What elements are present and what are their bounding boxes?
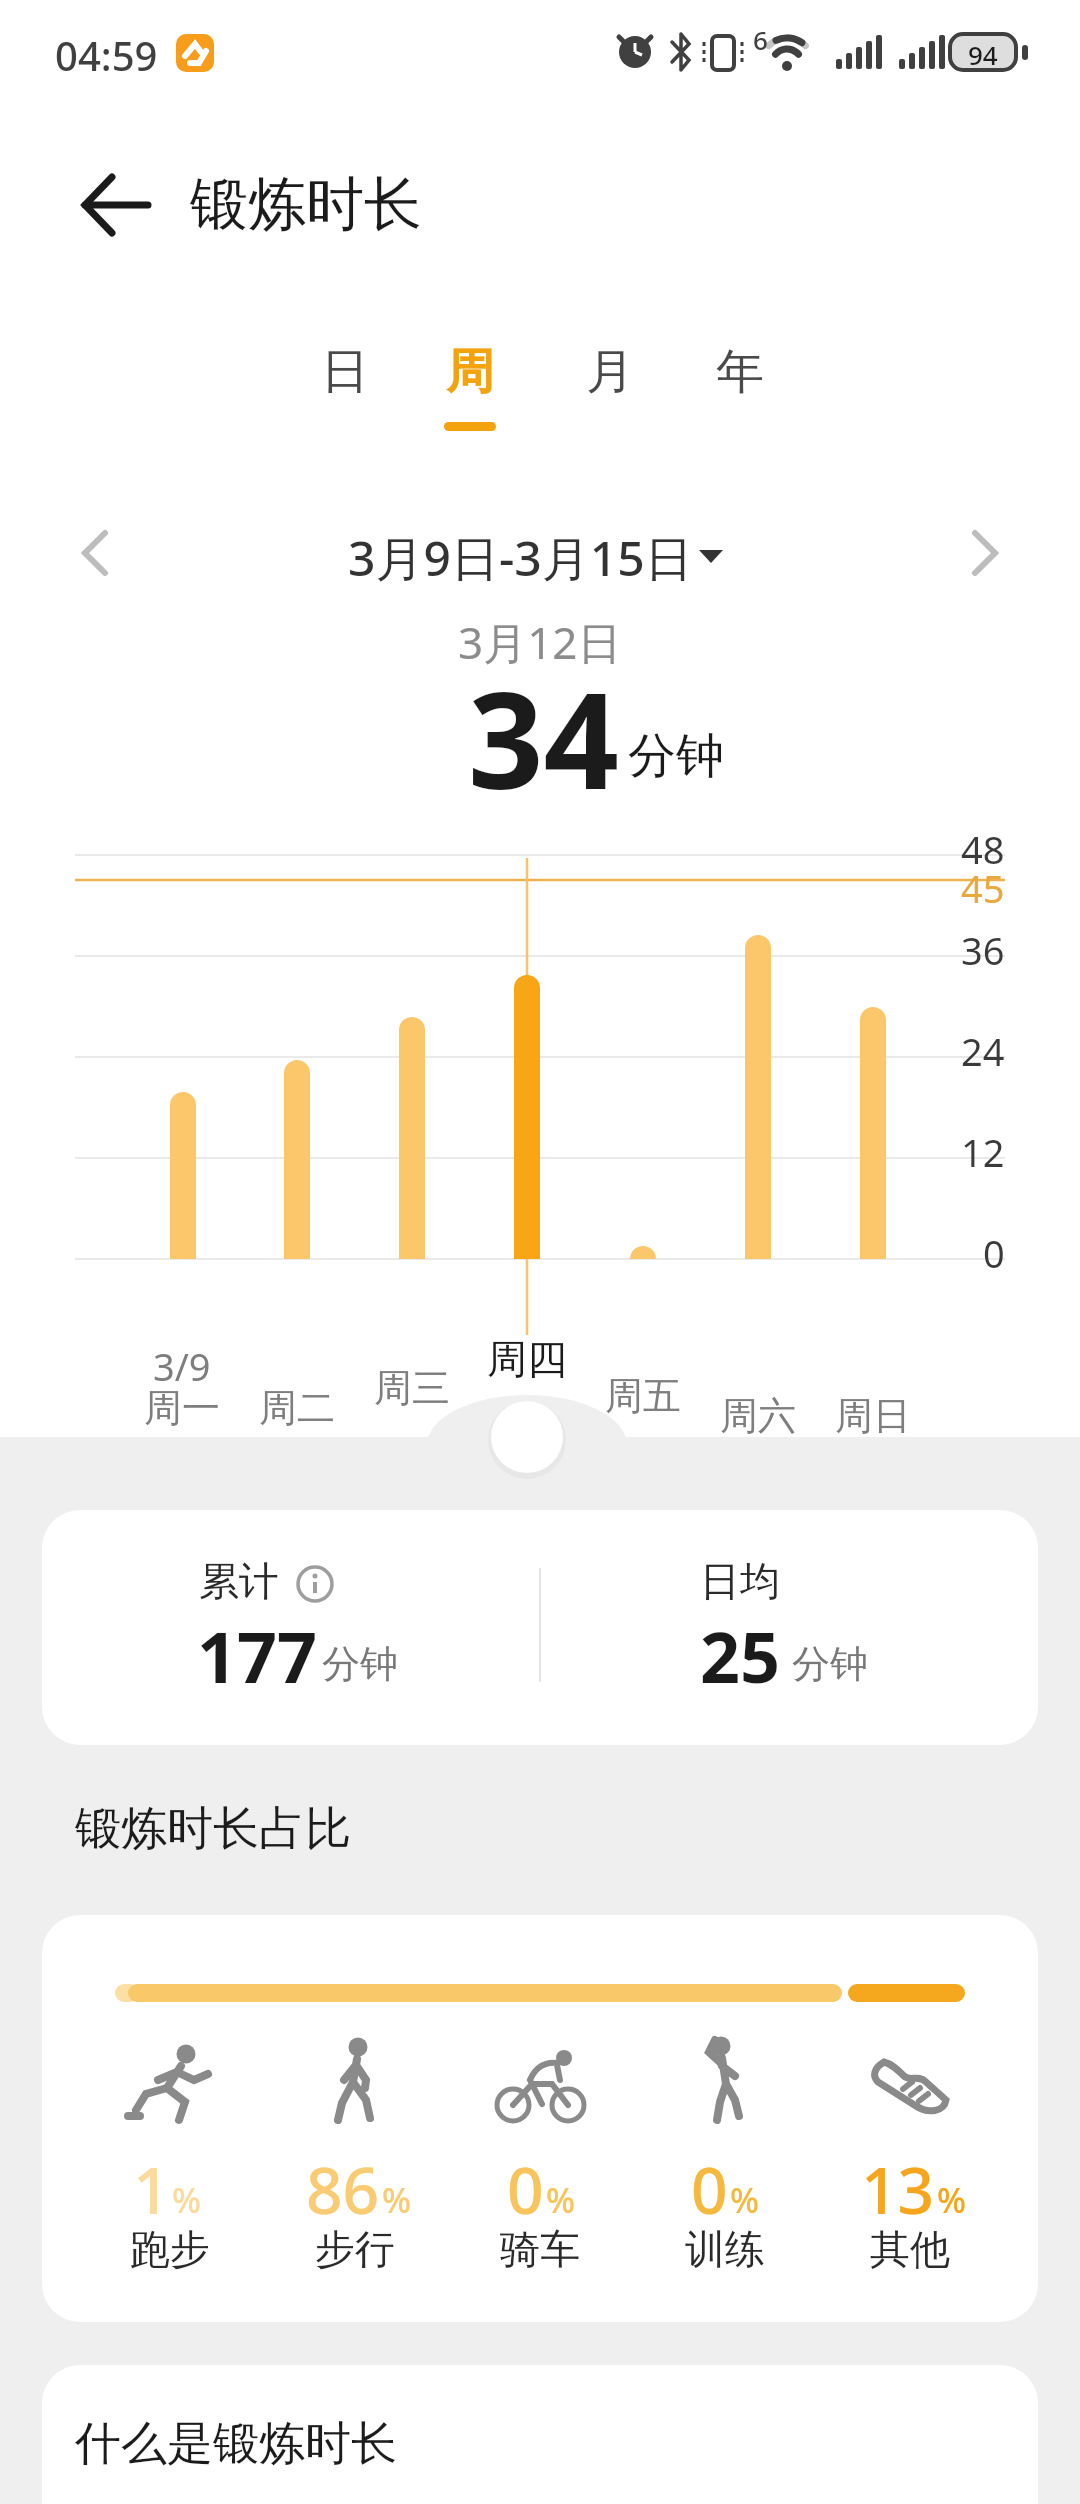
staticText: 训练 — [685, 2224, 765, 2274]
staticText: 月 — [586, 342, 634, 402]
staticText: 其他 — [870, 2224, 950, 2274]
staticText: 3月9日-3月15日 — [348, 525, 693, 591]
staticText: 3月12日 — [458, 612, 622, 672]
staticText: 周三 — [374, 1364, 450, 1412]
staticText: 04:59 — [55, 28, 158, 82]
button[interactable]: 月 — [555, 332, 665, 412]
staticText: 周 — [446, 342, 494, 402]
staticText: % — [382, 2177, 411, 2223]
staticText: % — [172, 2177, 201, 2223]
staticText: 3/9 — [153, 1340, 211, 1392]
staticText: 45 — [961, 862, 1005, 914]
staticText: 0 — [983, 1227, 1005, 1279]
staticText: 跑步 — [130, 2224, 210, 2274]
staticText: 日均 — [700, 1556, 780, 1606]
staticText: 48 — [961, 823, 1005, 875]
staticText: 24 — [961, 1025, 1005, 1077]
staticText: 0 — [691, 2146, 728, 2233]
button[interactable] — [295, 1564, 335, 1604]
button[interactable]: 年 — [685, 332, 795, 412]
staticText: 25 — [700, 1608, 781, 1703]
staticText: 34 — [468, 648, 620, 828]
staticText: 分钟 — [792, 1640, 868, 1688]
staticText: 1 — [133, 2146, 170, 2233]
button[interactable] — [42, 1510, 1038, 1745]
staticText: % — [937, 2177, 966, 2223]
staticText: % — [730, 2177, 759, 2223]
staticText: 周二 — [259, 1384, 335, 1432]
button[interactable] — [60, 515, 130, 585]
staticText: 177 — [197, 1608, 318, 1703]
staticText: 0 — [507, 2146, 544, 2233]
staticText: 年 — [716, 342, 764, 402]
staticText: 94 — [968, 37, 998, 72]
button[interactable] — [42, 2365, 1038, 2504]
staticText: 步行 — [315, 2224, 395, 2274]
staticText: 36 — [961, 924, 1005, 976]
staticText: 6 — [753, 22, 768, 57]
staticText: 86 — [306, 2146, 380, 2233]
staticText: 周六 — [720, 1392, 796, 1440]
button[interactable] — [60, 155, 160, 255]
staticText: 锻炼时长 — [190, 168, 422, 241]
staticText: % — [546, 2177, 575, 2223]
staticText: 分钟 — [322, 1640, 398, 1688]
staticText: 什么是锻炼时长 — [75, 2415, 397, 2473]
staticText: 周五 — [605, 1372, 681, 1420]
button[interactable] — [950, 515, 1020, 585]
button[interactable] — [340, 520, 740, 590]
button[interactable] — [42, 1915, 1038, 2322]
staticText: 日 — [321, 342, 369, 402]
staticText: 锻炼时长占比 — [75, 1800, 351, 1858]
staticText: 周四 — [487, 1334, 567, 1384]
staticText: 12 — [961, 1126, 1005, 1178]
staticText: 累计 — [199, 1556, 279, 1606]
staticText: 周日 — [835, 1392, 911, 1440]
staticText: 分钟 — [628, 726, 724, 786]
staticText: 骑车 — [500, 2224, 580, 2274]
staticText: 周一 — [144, 1384, 220, 1432]
button[interactable]: 周 — [415, 332, 525, 412]
button[interactable]: 日 — [290, 332, 400, 412]
staticText: 13 — [861, 2146, 935, 2233]
